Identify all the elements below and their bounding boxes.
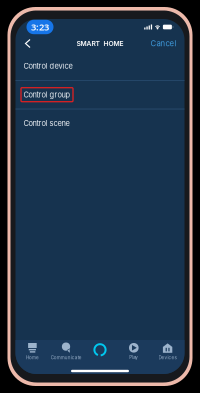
button[interactable]: Control scene bbox=[15, 109, 184, 137]
button[interactable]: Control group bbox=[15, 81, 184, 109]
button[interactable]: Alexa bbox=[83, 340, 117, 368]
staticText: Control device bbox=[23, 61, 72, 70]
staticText: Home bbox=[26, 355, 39, 360]
staticText: Cancel bbox=[150, 39, 176, 48]
button[interactable]: Back bbox=[15, 35, 37, 51]
button[interactable]: Control device bbox=[15, 52, 184, 80]
button[interactable]: Cancel bbox=[144, 35, 184, 52]
button[interactable]: Home bbox=[15, 340, 49, 368]
staticText: Play bbox=[129, 355, 138, 360]
staticText: SMART HOME bbox=[76, 39, 123, 48]
staticText: Devices bbox=[159, 355, 177, 360]
staticText: Control group bbox=[23, 90, 70, 99]
staticText: Communicate bbox=[51, 355, 82, 360]
button[interactable]: Communicate bbox=[49, 340, 83, 368]
button[interactable]: Devices bbox=[151, 340, 184, 368]
button[interactable]: Play bbox=[117, 340, 151, 368]
staticText: Control scene bbox=[23, 119, 69, 128]
staticText: 3:23 bbox=[31, 21, 49, 33]
